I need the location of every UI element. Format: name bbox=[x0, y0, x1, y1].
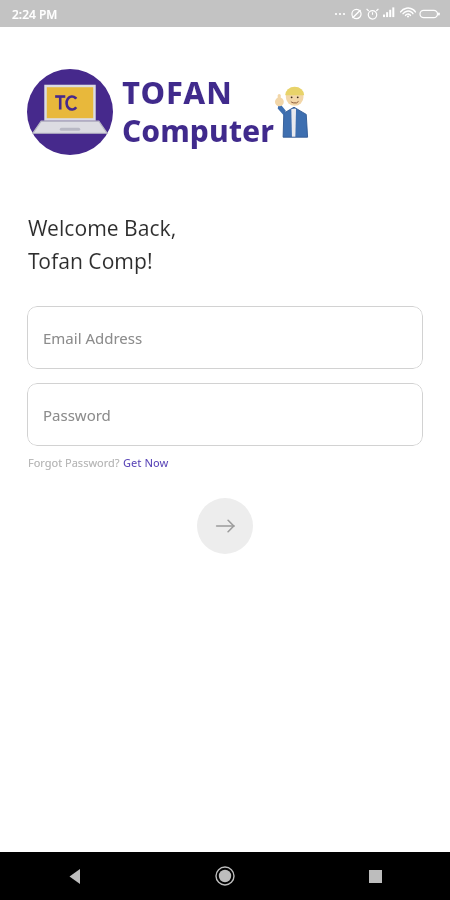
staticText: Get Now bbox=[123, 455, 169, 470]
button[interactable]: Back bbox=[0, 852, 150, 900]
staticText: 2:24 PM bbox=[12, 6, 58, 22]
button[interactable]: Sign in bbox=[197, 498, 253, 554]
button[interactable]: Recents bbox=[300, 852, 450, 900]
staticText: Welcome Back, bbox=[28, 214, 177, 243]
button[interactable]: Password bbox=[27, 383, 423, 446]
staticText: TOFAN bbox=[122, 71, 233, 113]
button[interactable]: Get Now bbox=[123, 455, 169, 470]
button[interactable]: Email Address bbox=[27, 306, 423, 369]
staticText: Computer bbox=[122, 110, 275, 151]
staticText: Forgot Password? bbox=[28, 455, 123, 470]
staticText: Password bbox=[43, 405, 111, 425]
button[interactable]: Home bbox=[150, 852, 300, 900]
staticText: Tofan Comp! bbox=[28, 247, 153, 276]
staticText: Email Address bbox=[43, 328, 143, 348]
